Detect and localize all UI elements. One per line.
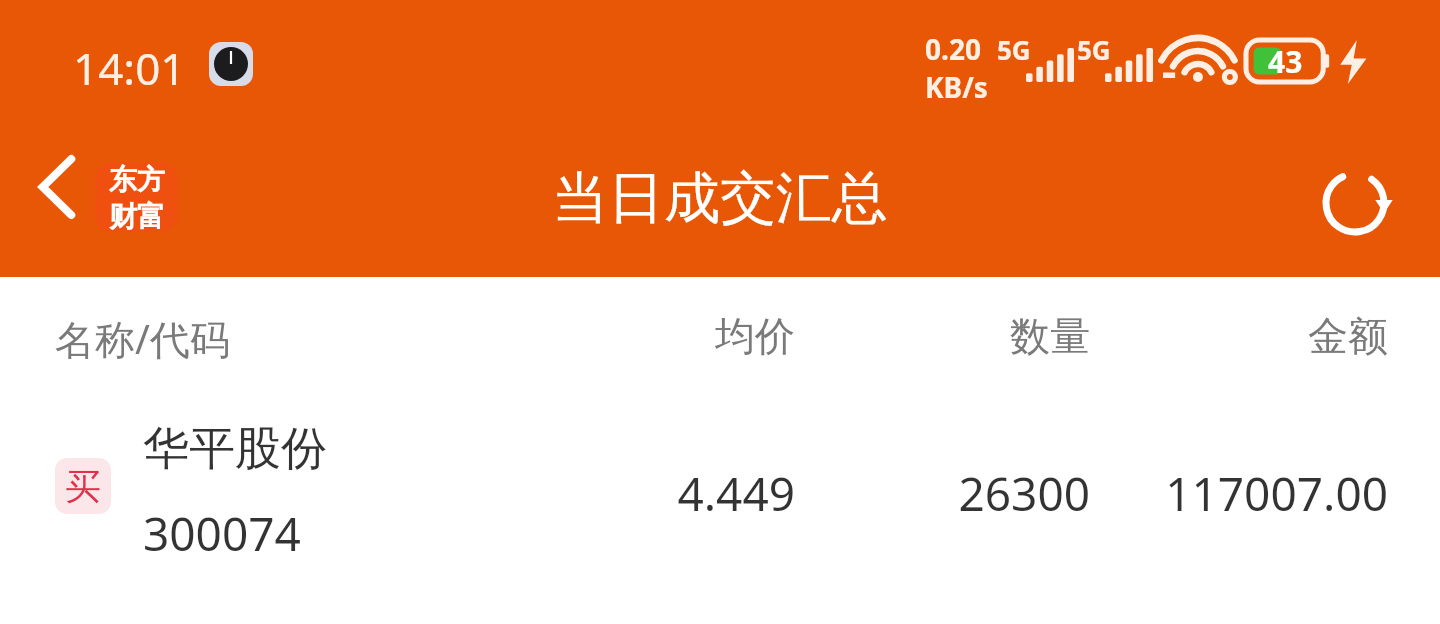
button[interactable]: 买	[0, 402, 1440, 582]
staticText: KB/s	[925, 68, 988, 106]
staticText: 14:01	[73, 38, 186, 98]
staticText: 5G	[1077, 32, 1111, 67]
button[interactable]: 返回	[12, 142, 102, 232]
staticText: 东方	[109, 162, 165, 197]
button[interactable]: 东方财富	[95, 162, 178, 232]
staticText: 买	[65, 464, 101, 509]
staticText: 数量	[890, 311, 1090, 361]
staticText: 0.20	[925, 30, 981, 68]
staticText: 财富	[109, 199, 165, 232]
staticText: 26300	[890, 462, 1090, 525]
staticText: 华平股份	[143, 420, 327, 478]
staticText: 117007.00	[1088, 462, 1388, 525]
staticText: 金额	[1188, 311, 1388, 361]
staticText: 均价	[595, 311, 795, 361]
staticText: 4.449	[595, 462, 795, 525]
staticText: 名称/代码	[55, 311, 230, 366]
staticText: 43	[1268, 41, 1303, 82]
staticText: 当日成交汇总	[552, 163, 888, 234]
staticText: 300074	[143, 502, 301, 565]
button[interactable]: 刷新	[1310, 158, 1400, 248]
staticText: 5G	[997, 32, 1031, 67]
